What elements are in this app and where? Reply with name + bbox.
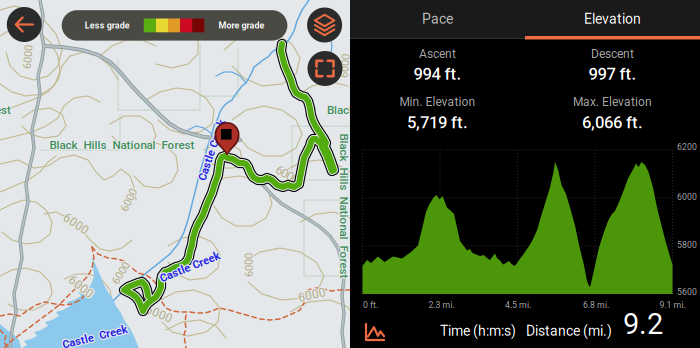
staticText: Black Hills National Forest [272, 198, 417, 212]
staticText: 6000 [67, 280, 95, 294]
staticText: Castle Creek [159, 260, 223, 273]
staticText: 6000 [66, 279, 94, 293]
staticText: 6000 [298, 288, 326, 302]
staticText: 6000 [67, 279, 95, 293]
staticText: 6000 [144, 308, 172, 322]
staticText: est [0, 103, 12, 117]
staticText: 6000 [118, 194, 142, 206]
staticText: 6000 [16, 49, 40, 62]
staticText: 6000 [236, 259, 260, 271]
staticText: 6000 [61, 218, 89, 232]
staticText: Castle Creek [63, 331, 130, 343]
staticText: 6000 [118, 194, 142, 207]
staticText: Castle Creek [181, 144, 245, 156]
staticText: Black Hills National Forest [51, 138, 196, 152]
staticText: 6000 [62, 218, 90, 232]
staticText: 6000 [62, 217, 90, 231]
staticText: 6000 [238, 259, 262, 271]
staticText: 6000 [110, 267, 134, 279]
staticText: 6000 [66, 281, 94, 295]
staticText: Black [326, 102, 354, 116]
staticText: 6000 [275, 168, 299, 182]
button[interactable]: Graph type [359, 317, 391, 347]
staticText: 6000 [145, 307, 173, 321]
staticText: Pace [422, 11, 453, 27]
staticText: 6000 [332, 60, 356, 72]
staticText: 6000 [275, 169, 299, 183]
staticText: 6000 [334, 59, 358, 72]
staticText: Castle Creek [157, 261, 221, 273]
staticText: Castle Creek [159, 261, 223, 274]
staticText: 6,066 ft. [582, 113, 643, 132]
staticText: est [0, 102, 12, 116]
staticText: 6000 [116, 194, 140, 207]
staticText: 6000 [299, 287, 327, 301]
staticText: 6000 [110, 266, 134, 279]
staticText: 5800 [677, 240, 697, 250]
staticText: Black Hills National Forest [50, 139, 195, 153]
staticText: 6000 [146, 307, 174, 321]
staticText: 6000 [276, 169, 300, 183]
staticText: 6000 [63, 218, 91, 232]
staticText: 6000 [61, 217, 89, 231]
staticText: Castle Creek [158, 259, 222, 272]
staticText: est [0, 103, 11, 117]
staticText: 9.1 mi. [659, 300, 685, 310]
staticText: 6000 [109, 268, 133, 281]
staticText: Black [327, 104, 355, 118]
staticText: 6000 [237, 257, 261, 270]
staticText: 6000 [61, 216, 89, 230]
staticText: est [0, 102, 11, 116]
staticText: 5,719 ft. [407, 113, 468, 132]
staticText: Black [328, 104, 356, 118]
staticText: 6000 [274, 168, 298, 182]
staticText: 6000 [108, 267, 132, 279]
staticText: 6000 [110, 267, 134, 280]
staticText: 6000 [146, 306, 174, 320]
staticText: Castle Creek [62, 331, 129, 344]
staticText: 6000 [15, 51, 39, 63]
staticText: Black Hills National Forest [273, 199, 418, 213]
staticText: Castle Creek [61, 331, 128, 343]
staticText: Elevation [584, 11, 641, 27]
staticText: 6000 [15, 50, 39, 63]
staticText: Castle Creek [181, 144, 245, 157]
staticText: 6000 [108, 266, 132, 279]
button[interactable]: Map layers [307, 7, 342, 42]
staticText: Black [327, 102, 355, 116]
staticText: 6000 [238, 258, 262, 271]
staticText: 6000 [236, 259, 260, 272]
staticText: Black [327, 103, 355, 117]
button[interactable]: Expand map [307, 51, 342, 86]
staticText: 6000 [298, 289, 326, 303]
staticText: Castle Creek [158, 261, 222, 273]
staticText: 4.5 mi. [505, 300, 531, 310]
button[interactable]: Back [7, 7, 42, 42]
button[interactable]: Less grade [62, 10, 287, 41]
staticText: 6.8 mi. [583, 300, 609, 310]
staticText: 6000 [145, 308, 173, 322]
staticText: Castle Creek [157, 260, 221, 273]
staticText: 6000 [275, 167, 299, 181]
staticText: 5600 [677, 287, 697, 297]
staticText: Max. Elevation [573, 95, 652, 109]
staticText: 6000 [117, 192, 141, 205]
staticText: More grade [218, 20, 264, 31]
staticText: Black Hills National Forest [271, 198, 416, 212]
staticText: 6000 [67, 281, 95, 295]
staticText: Castle Creek [61, 329, 128, 342]
staticText: Ascent [419, 47, 456, 61]
button[interactable]: Pace [350, 0, 525, 38]
staticText: Black Hills National Forest [49, 137, 194, 151]
staticText: Black [326, 103, 354, 117]
button[interactable]: Elevation [525, 0, 700, 38]
staticText: 6000 [333, 61, 357, 74]
staticText: Castle Creek [157, 261, 221, 274]
staticText: Castle Creek [61, 330, 128, 343]
staticText: 6000 [334, 60, 358, 73]
staticText: Black [326, 104, 354, 118]
staticText: 6000 [146, 308, 174, 322]
staticText: 6000 [297, 288, 325, 302]
staticText: Less grade [85, 20, 130, 31]
staticText: Castle Creek [159, 261, 223, 273]
